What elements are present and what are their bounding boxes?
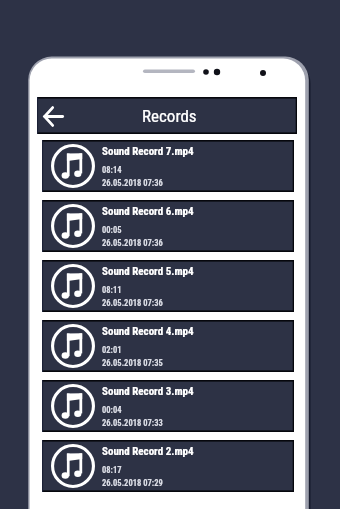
button[interactable]: Sound Record 2.mp4 (42, 440, 294, 492)
staticText: Sound Record 7.mp4 (102, 145, 194, 158)
staticText: Sound Record 3.mp4 (102, 385, 194, 398)
staticText: 26.05.2018 07:36 (102, 298, 163, 308)
staticText: 02:01 (102, 345, 122, 355)
staticText: 00:04 (102, 405, 122, 415)
staticText: 26.05.2018 07:36 (102, 238, 163, 248)
staticText: Sound Record 4.mp4 (102, 325, 194, 338)
staticText: 08:11 (102, 285, 122, 295)
button[interactable]: Sound Record 5.mp4 (42, 260, 294, 312)
staticText: Sound Record 5.mp4 (102, 265, 194, 278)
button[interactable]: Sound Record 4.mp4 (42, 320, 294, 372)
button[interactable]: Back (40, 101, 66, 131)
staticText: 08:17 (102, 465, 122, 475)
staticText: Sound Record 2.mp4 (102, 445, 194, 458)
button[interactable]: Sound Record 7.mp4 (42, 140, 294, 192)
staticText: Records (142, 106, 197, 126)
staticText: 26.05.2018 07:35 (102, 358, 163, 368)
staticText: 26.05.2018 07:36 (102, 178, 163, 188)
staticText: Sound Record 6.mp4 (102, 205, 194, 218)
staticText: 26.05.2018 07:29 (102, 478, 163, 488)
button[interactable]: Records (37, 97, 297, 134)
button[interactable]: Sound Record 6.mp4 (42, 200, 294, 252)
staticText: 26.05.2018 07:33 (102, 418, 163, 428)
staticText: 00:05 (102, 225, 122, 235)
button[interactable]: Sound Record 3.mp4 (42, 380, 294, 432)
staticText: 08:14 (102, 165, 122, 175)
